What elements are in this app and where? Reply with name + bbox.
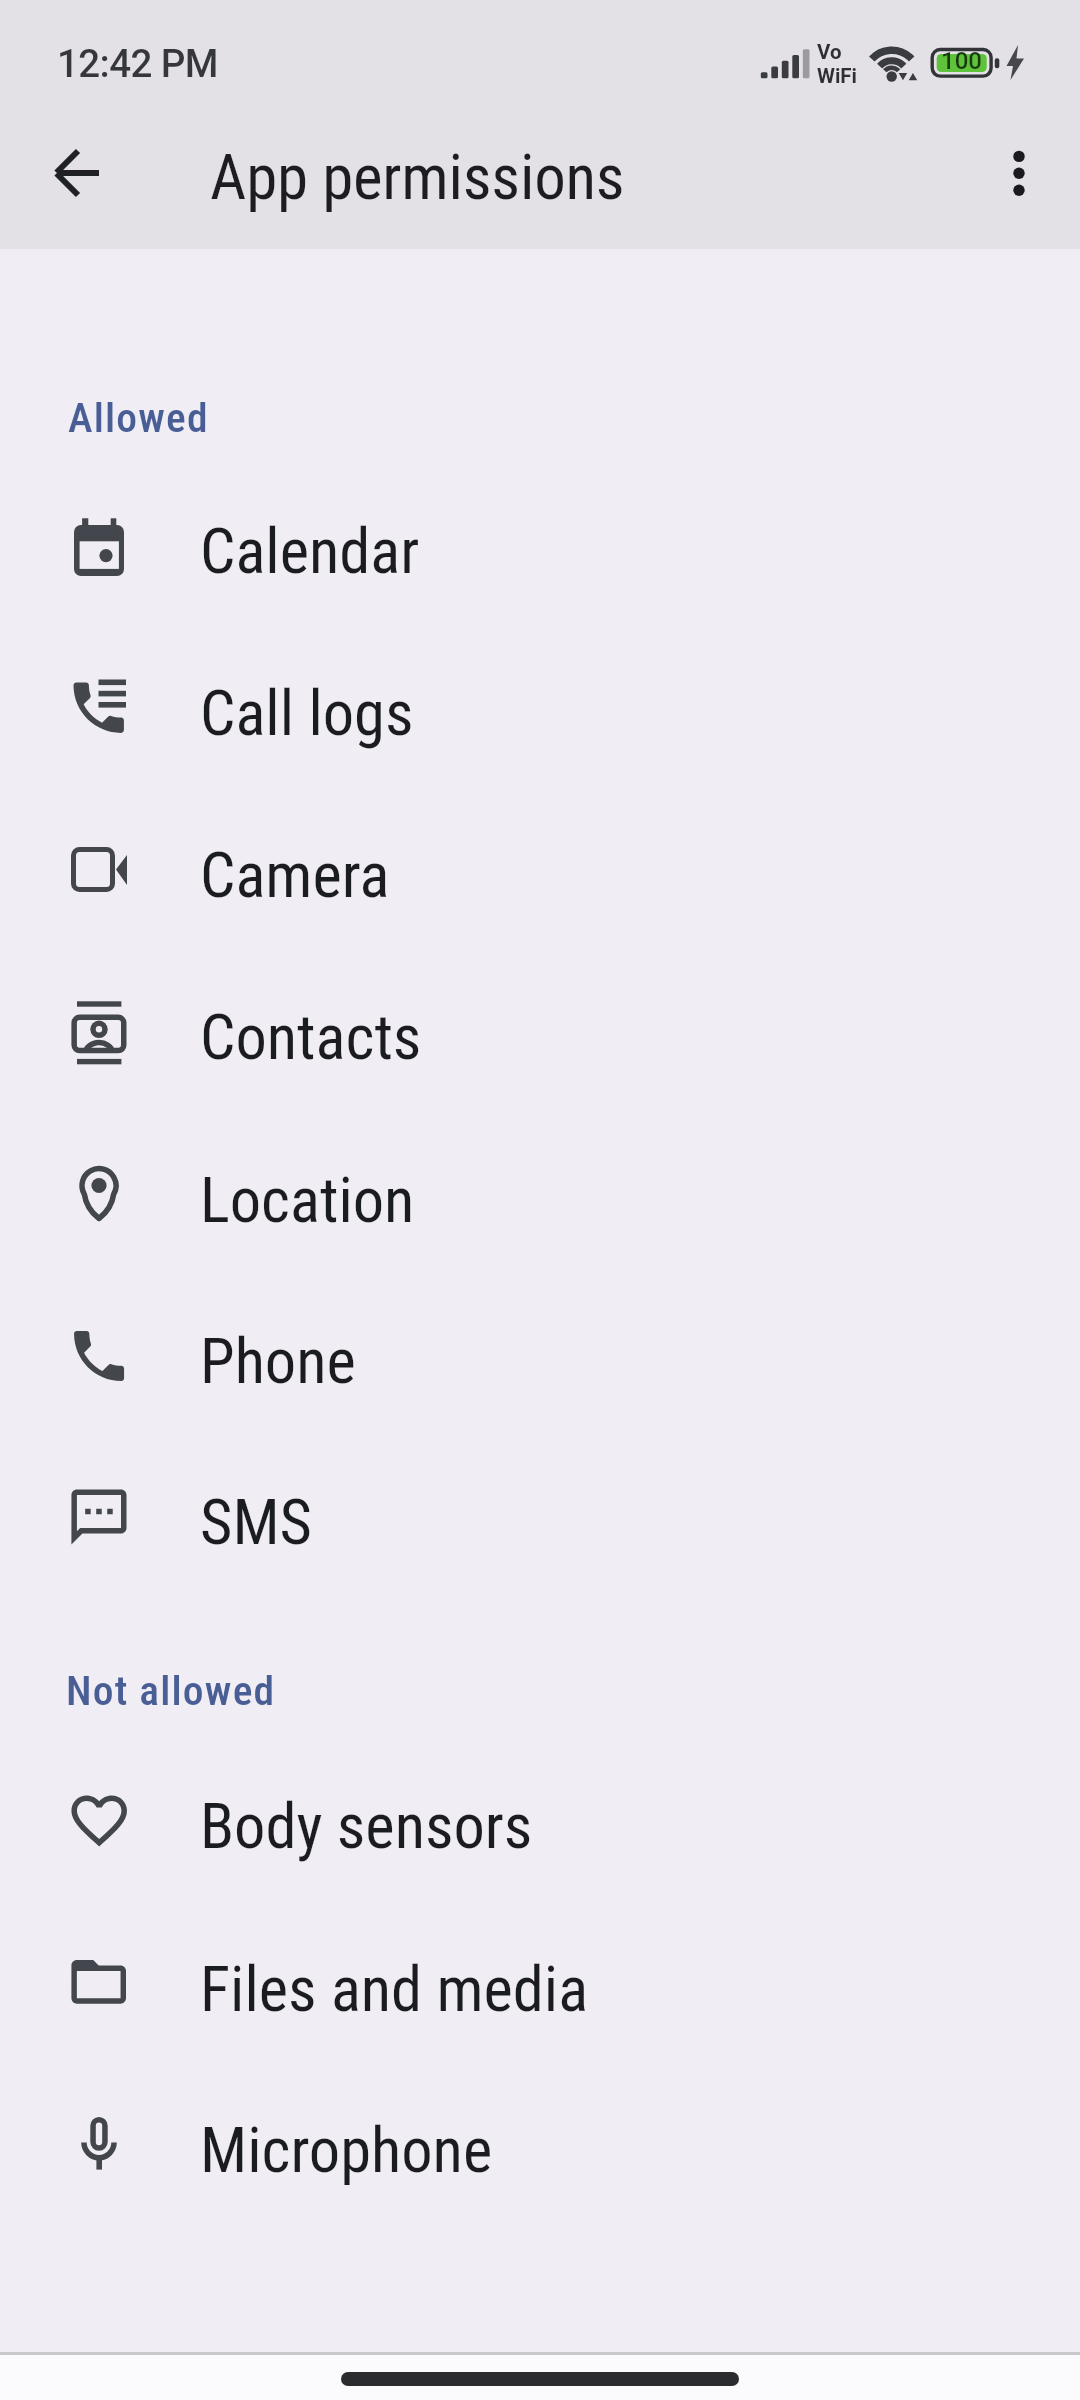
staticText: Body sensors — [200, 1790, 533, 1863]
button[interactable]: Files and media — [0, 1904, 1080, 2066]
staticText: Location — [200, 1164, 415, 1237]
staticText: Calendar — [200, 515, 420, 588]
button[interactable]: Phone — [0, 1276, 1080, 1438]
staticText: SMS — [200, 1486, 313, 1559]
staticText: Microphone — [200, 2114, 493, 2187]
staticText: Not allowed — [66, 1666, 276, 1715]
staticText: Vo — [817, 40, 842, 64]
staticText: Files and media — [200, 1953, 589, 2026]
button[interactable]: Body sensors — [0, 1741, 1080, 1903]
button[interactable]: Calendar — [0, 466, 1080, 628]
staticText: 100 — [941, 47, 982, 74]
staticText: Contacts — [200, 1001, 422, 1074]
staticText: Call logs — [200, 677, 414, 750]
button[interactable]: Location — [0, 1115, 1080, 1277]
staticText: Allowed — [68, 393, 209, 442]
button[interactable] — [23, 118, 133, 228]
staticText: Camera — [200, 839, 390, 912]
staticText: App permissions — [210, 141, 625, 215]
staticText: Phone — [200, 1325, 356, 1398]
button[interactable]: Call logs — [0, 628, 1080, 790]
button[interactable] — [964, 118, 1074, 228]
button[interactable]: Microphone — [0, 2065, 1080, 2227]
staticText: 12:42 PM — [57, 41, 218, 86]
staticText: WiFi — [817, 64, 858, 88]
button[interactable]: Camera — [0, 790, 1080, 952]
button[interactable]: SMS — [0, 1437, 1080, 1599]
button[interactable]: Contacts — [0, 952, 1080, 1114]
